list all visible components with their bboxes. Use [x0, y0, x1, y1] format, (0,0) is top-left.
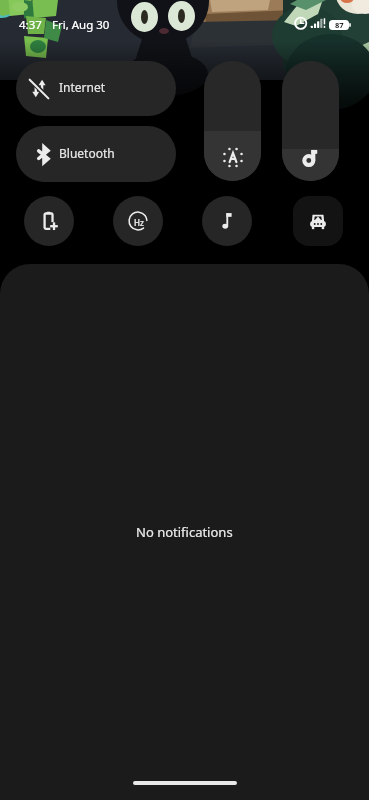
- staticText: 4:37: [19, 17, 42, 33]
- staticText: Fri, Aug 30: [52, 17, 110, 33]
- button[interactable]: Screen refresh rate: [113, 196, 163, 246]
- staticText: Hz: [134, 217, 144, 228]
- button[interactable]: Volume: [282, 61, 339, 181]
- staticText: Bluetooth: [59, 145, 115, 161]
- staticText: 87: [335, 20, 344, 30]
- button[interactable]: Brightness: [204, 61, 261, 181]
- button[interactable]: Bedtime mode: [293, 196, 343, 246]
- staticText: Internet: [59, 79, 106, 95]
- button[interactable]: Bluetooth: [16, 126, 176, 182]
- button[interactable]: Sound mode: [202, 196, 252, 246]
- button[interactable]: Battery saver: [24, 196, 74, 246]
- staticText: No notifications: [136, 523, 233, 541]
- button[interactable]: Internet: [16, 61, 176, 116]
